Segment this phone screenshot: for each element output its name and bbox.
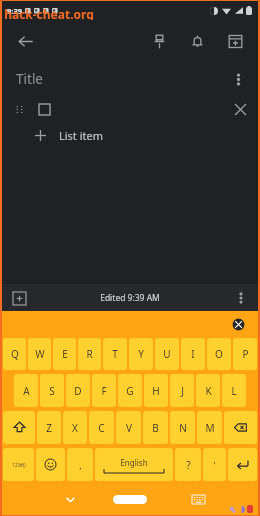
button[interactable]: K	[196, 374, 220, 407]
button[interactable]: F	[92, 374, 116, 407]
staticText: Q	[11, 347, 19, 361]
button[interactable]: A	[14, 374, 38, 407]
button[interactable]: Delete item	[227, 96, 253, 122]
button[interactable]: Back	[10, 26, 40, 56]
button[interactable]: B	[143, 411, 168, 444]
button[interactable]: U	[155, 338, 179, 370]
button[interactable]: Z	[37, 411, 61, 444]
staticText: A	[23, 384, 30, 398]
staticText: X	[72, 421, 78, 435]
button[interactable]: Hide keyboard	[58, 487, 82, 511]
staticText: C	[98, 421, 105, 435]
staticText: J	[181, 384, 184, 398]
staticText: N	[179, 421, 187, 435]
staticText: L	[231, 384, 237, 398]
staticText: ?	[186, 458, 191, 472]
button[interactable]: G	[118, 374, 142, 407]
button[interactable]: Close suggestions	[228, 314, 248, 334]
staticText: K	[205, 384, 212, 398]
staticText: 123#()	[12, 462, 26, 468]
button[interactable]: M	[197, 411, 222, 444]
staticText: Title	[16, 70, 43, 88]
staticText: English	[120, 457, 148, 468]
button[interactable]: H	[144, 374, 168, 407]
button[interactable]: Backspace	[224, 411, 257, 444]
staticText: 9:39	[7, 6, 22, 16]
button[interactable]: J	[170, 374, 194, 407]
button[interactable]: Reminder	[182, 26, 212, 56]
staticText: D	[74, 384, 82, 398]
button[interactable]: C	[89, 411, 114, 444]
staticText: Edited 9:39 AM	[100, 292, 160, 304]
staticText: B	[152, 421, 159, 435]
staticText: E	[62, 347, 68, 361]
button[interactable]: I	[181, 338, 205, 370]
button[interactable]: ?	[175, 448, 201, 481]
button[interactable]: Title	[2, 62, 258, 96]
staticText: V	[126, 421, 132, 435]
button[interactable]: Q	[3, 338, 26, 370]
staticText: Z	[46, 421, 52, 435]
button[interactable]: W	[28, 338, 51, 370]
button[interactable]: '	[203, 448, 226, 481]
staticText: List item	[59, 128, 103, 143]
staticText: F	[101, 384, 107, 398]
button[interactable]: Home	[113, 495, 147, 504]
button[interactable]: P	[233, 338, 257, 370]
button[interactable]: Pin	[144, 26, 174, 56]
button[interactable]: 123#()	[3, 448, 34, 481]
button[interactable]: Space	[95, 448, 173, 481]
button[interactable]: D	[66, 374, 90, 407]
button[interactable]: More	[229, 286, 253, 310]
button[interactable]: V	[116, 411, 141, 444]
staticText: H	[152, 384, 160, 398]
button[interactable]: R	[78, 338, 101, 370]
staticText: U	[163, 347, 171, 361]
button[interactable]: O	[207, 338, 231, 370]
button[interactable]: ,	[67, 448, 93, 481]
staticText: I	[191, 347, 195, 361]
button[interactable]: Checkbox	[33, 98, 55, 120]
staticText: O	[215, 347, 223, 361]
staticText: T	[112, 347, 118, 361]
staticText: hack-cheat.org	[4, 6, 94, 22]
button[interactable]: S	[40, 374, 64, 407]
button[interactable]: Add	[7, 286, 31, 310]
staticText: '	[213, 459, 216, 471]
button[interactable]: E	[53, 338, 76, 370]
staticText: P	[242, 347, 249, 361]
staticText: S	[49, 384, 55, 398]
staticText: ,	[79, 459, 82, 471]
staticText: W	[35, 347, 45, 361]
button[interactable]: Enter	[228, 448, 257, 481]
staticText: G	[126, 384, 134, 398]
button[interactable]: X	[63, 411, 87, 444]
button[interactable]: Y	[129, 338, 153, 370]
button[interactable]: Switch keyboard	[186, 487, 210, 511]
staticText: R	[86, 347, 93, 361]
button[interactable]: L	[222, 374, 246, 407]
button[interactable]: Archive	[220, 26, 250, 56]
staticText: Y	[138, 347, 144, 361]
staticText: M	[205, 421, 215, 435]
button[interactable]: List item	[2, 122, 258, 148]
button[interactable]: Shift	[3, 411, 35, 444]
button[interactable]: N	[170, 411, 195, 444]
button[interactable]: T	[103, 338, 127, 370]
button[interactable]: Emoji	[36, 448, 65, 481]
button[interactable]: Checkbox	[2, 96, 258, 122]
button[interactable]: More options	[224, 65, 252, 93]
